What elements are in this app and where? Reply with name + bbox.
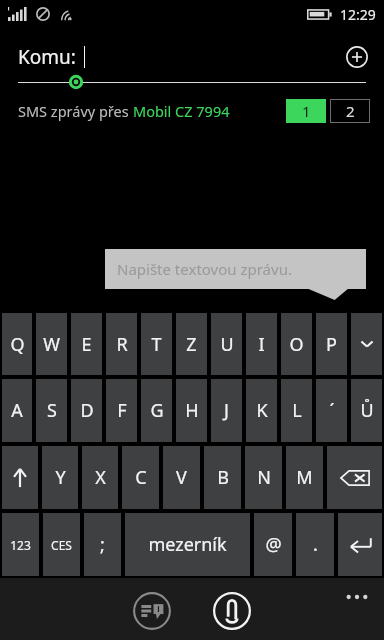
button[interactable]: S — [36, 379, 67, 442]
staticText: ´ — [329, 398, 335, 423]
staticText: Q — [10, 332, 25, 357]
staticText: I — [258, 332, 265, 357]
button[interactable]: G — [141, 379, 172, 442]
button[interactable]: 123 — [2, 513, 39, 576]
staticText: Mobil CZ 7994 — [133, 101, 230, 121]
button[interactable]: 1 — [286, 99, 326, 123]
button[interactable]: Q — [2, 313, 32, 375]
button[interactable]: CES — [43, 513, 80, 576]
button[interactable]: @ — [254, 513, 292, 576]
staticText: J — [224, 398, 229, 423]
staticText: E — [81, 332, 92, 357]
button[interactable]: Napište textovou zprávu. — [105, 249, 366, 289]
staticText: T — [151, 332, 162, 357]
button[interactable]: H — [176, 379, 207, 442]
button[interactable]: I — [246, 313, 277, 375]
staticText: Ů — [360, 398, 374, 423]
staticText: O — [289, 332, 304, 357]
staticText: CES — [51, 537, 72, 553]
staticText: 12:29 — [340, 5, 376, 24]
button[interactable]: N — [245, 446, 282, 509]
staticText: 1 — [302, 101, 311, 121]
staticText: . — [313, 532, 318, 557]
staticText: 2 — [346, 101, 355, 121]
button[interactable]: ; — [84, 513, 121, 576]
button[interactable]: Message count — [128, 587, 176, 635]
staticText: L — [292, 398, 302, 423]
staticText: D — [80, 398, 94, 423]
staticText: @ — [265, 532, 282, 557]
button[interactable]: C — [122, 446, 159, 509]
button[interactable]: R — [106, 313, 137, 375]
staticText: SMS zprávy přes — [18, 101, 133, 121]
staticText: G — [150, 398, 164, 423]
staticText: H — [185, 398, 199, 423]
button[interactable]: O — [281, 313, 312, 375]
button[interactable]: 2 — [330, 99, 370, 123]
button[interactable]: Shift — [2, 446, 38, 509]
button[interactable]: T — [141, 313, 172, 375]
button[interactable]: D — [71, 379, 102, 442]
button[interactable]: Enter — [338, 513, 382, 576]
staticText: M — [296, 465, 313, 490]
staticText: S — [47, 398, 57, 423]
button[interactable]: L — [281, 379, 312, 442]
button[interactable]: . — [296, 513, 334, 576]
staticText: F — [117, 398, 127, 423]
button[interactable]: P — [316, 313, 347, 375]
staticText: B — [217, 465, 229, 490]
button[interactable]: Attach — [208, 587, 256, 635]
staticText: C — [135, 465, 147, 490]
staticText: mezerník — [148, 532, 227, 557]
button[interactable]: Add recipient — [342, 42, 372, 72]
staticText: N — [257, 465, 271, 490]
button[interactable]: Z — [176, 313, 207, 375]
button[interactable]: W — [36, 313, 67, 375]
staticText: W — [43, 332, 60, 357]
staticText: Napište textovou zprávu. — [117, 259, 292, 279]
staticText: Z — [186, 332, 197, 357]
button[interactable]: K — [246, 379, 277, 442]
staticText: P — [326, 332, 337, 357]
staticText: A — [11, 398, 23, 423]
button[interactable]: A — [2, 379, 32, 442]
staticText: ; — [100, 532, 105, 557]
button[interactable]: Ů — [351, 379, 382, 442]
button[interactable]: V — [163, 446, 200, 509]
button[interactable]: M — [286, 446, 323, 509]
button[interactable]: More options — [340, 586, 374, 608]
button[interactable]: X — [82, 446, 118, 509]
staticText: K — [256, 398, 268, 423]
button[interactable]: mezerník — [125, 513, 250, 576]
button[interactable]: U — [211, 313, 242, 375]
button[interactable]: E — [71, 313, 102, 375]
staticText: Y — [55, 465, 66, 490]
staticText: Komu: — [18, 44, 76, 70]
button[interactable]: B — [204, 446, 241, 509]
staticText: U — [220, 332, 234, 357]
button[interactable]: F — [106, 379, 137, 442]
button[interactable]: More — [351, 313, 382, 375]
staticText: R — [116, 332, 128, 357]
staticText: X — [95, 465, 106, 490]
button[interactable]: Y — [42, 446, 78, 509]
button[interactable]: J — [211, 379, 242, 442]
staticText: 123 — [10, 537, 31, 553]
button[interactable]: ´ — [316, 379, 347, 442]
button[interactable]: Backspace — [327, 446, 382, 509]
staticText: V — [176, 465, 187, 490]
